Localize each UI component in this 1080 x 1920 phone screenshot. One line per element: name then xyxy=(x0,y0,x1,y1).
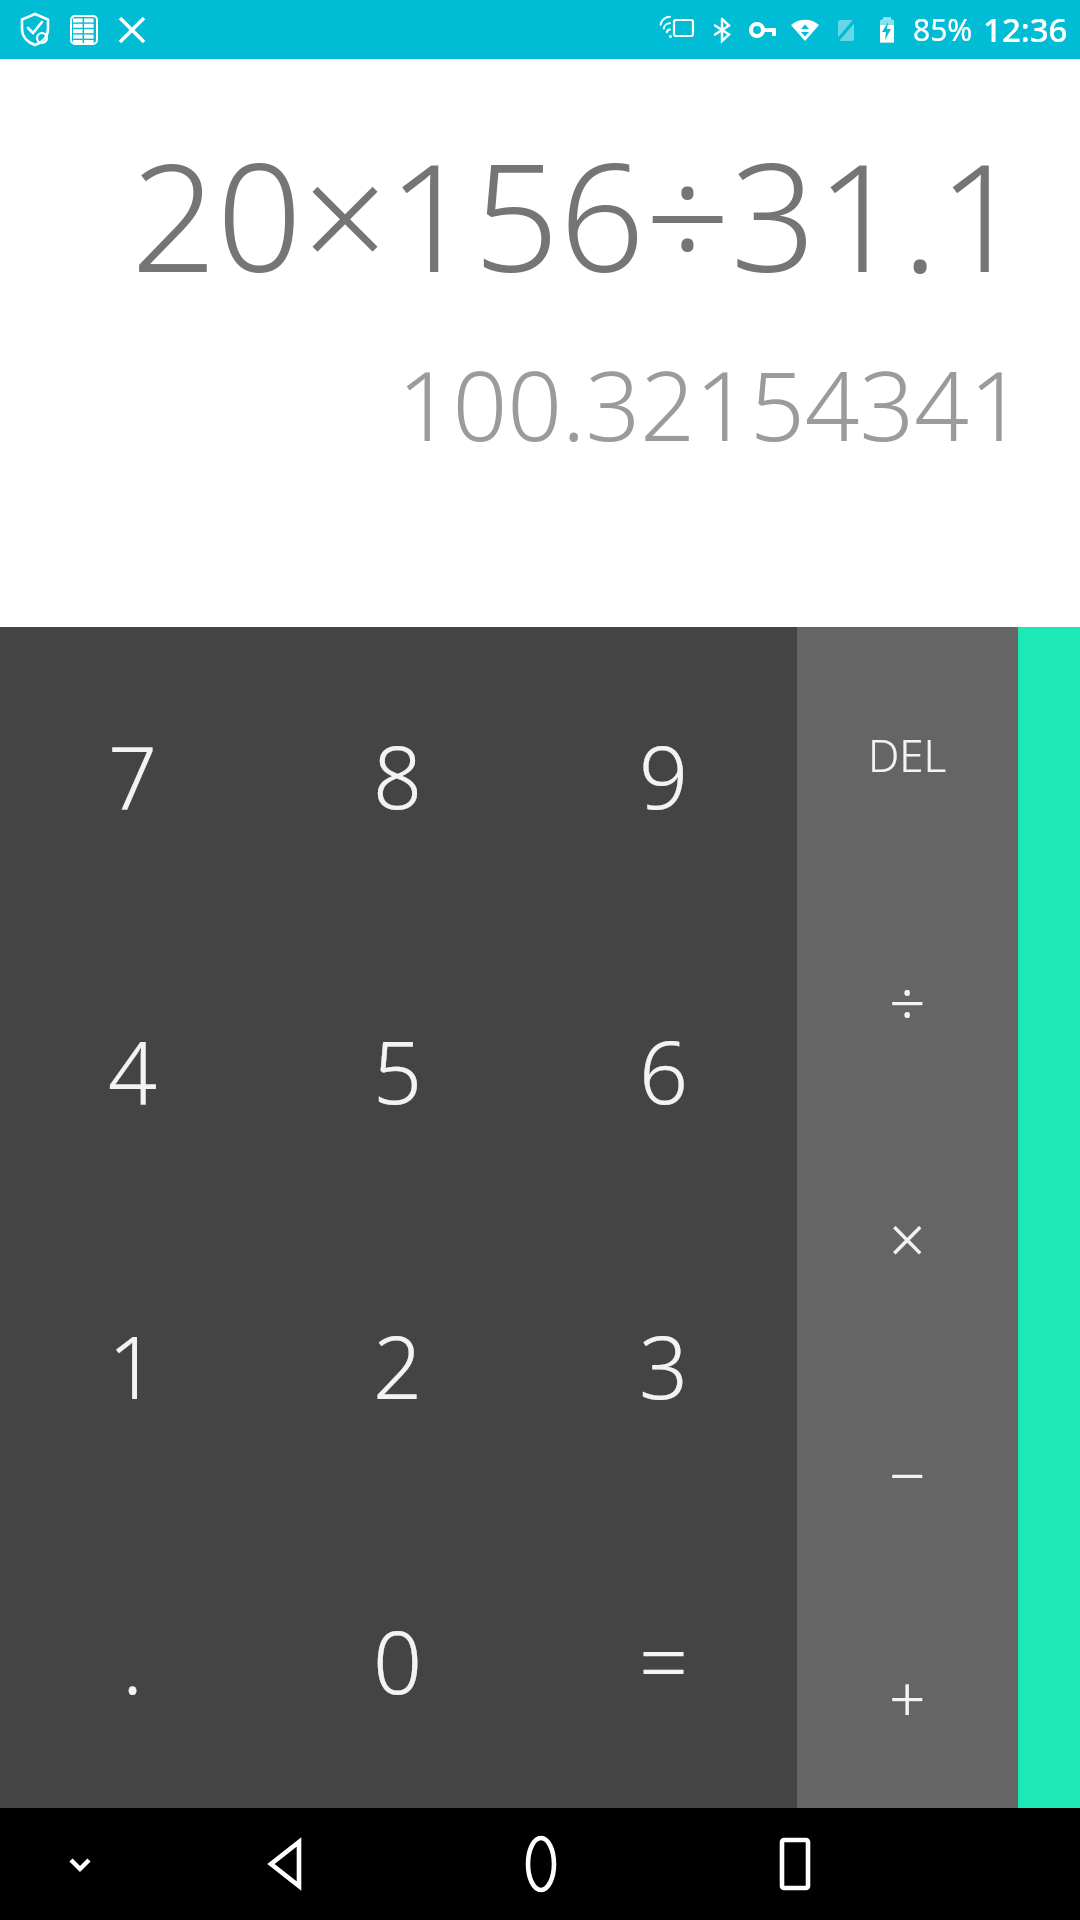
button[interactable]: Divide xyxy=(797,887,1018,1123)
staticText: . xyxy=(122,1602,143,1719)
staticText: 20×156÷31.1 xyxy=(130,112,1024,316)
button[interactable]: 8 xyxy=(265,627,531,923)
button[interactable]: Multiply xyxy=(797,1123,1018,1359)
staticText: × xyxy=(889,1195,926,1282)
staticText: 5 xyxy=(373,1012,423,1129)
button[interactable]: 9 xyxy=(531,627,797,923)
button[interactable]: Recent apps xyxy=(667,1808,920,1920)
button[interactable]: Home xyxy=(414,1808,667,1920)
button[interactable]: Back xyxy=(160,1808,414,1920)
staticText: 9 xyxy=(639,717,689,834)
button[interactable]: 5 xyxy=(265,923,531,1218)
staticText: = xyxy=(639,1602,689,1719)
staticText: + xyxy=(889,1655,926,1742)
staticText: 3 xyxy=(639,1307,689,1424)
button[interactable]: 7 xyxy=(0,627,265,923)
button[interactable]: Add xyxy=(797,1595,1018,1808)
button[interactable]: Delete xyxy=(797,627,1018,887)
staticText: 4 xyxy=(108,1012,158,1129)
button[interactable]: 3 xyxy=(531,1218,797,1513)
button[interactable]: Subtract xyxy=(797,1359,1018,1595)
staticText: 8 xyxy=(373,717,423,834)
staticText: − xyxy=(889,1431,926,1518)
button[interactable]: 1 xyxy=(0,1218,265,1513)
staticText: 12:36 xyxy=(983,7,1068,52)
button[interactable]: Hide keyboard xyxy=(0,1808,160,1920)
staticText: 85% xyxy=(913,9,973,50)
staticText: 7 xyxy=(108,717,158,834)
staticText: ÷ xyxy=(889,959,926,1046)
staticText: DEL xyxy=(868,725,947,785)
staticText: 0 xyxy=(373,1602,423,1719)
staticText: 100.32154341 xyxy=(397,338,1024,469)
staticText: 6 xyxy=(639,1012,689,1129)
button[interactable]: 4 xyxy=(0,923,265,1218)
button[interactable]: = xyxy=(531,1513,797,1808)
button[interactable]: 0 xyxy=(265,1513,531,1808)
staticText: 2 xyxy=(373,1307,423,1424)
button[interactable]: 6 xyxy=(531,923,797,1218)
staticText: 1 xyxy=(108,1307,158,1424)
button[interactable]: 2 xyxy=(265,1218,531,1513)
button[interactable]: . xyxy=(0,1513,265,1808)
